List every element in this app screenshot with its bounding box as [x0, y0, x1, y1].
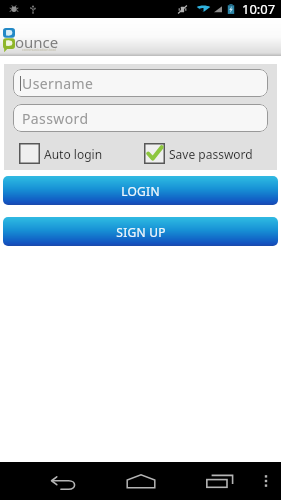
- button[interactable]: Home: [102, 462, 180, 500]
- button[interactable]: Auto login: [19, 143, 103, 164]
- button[interactable]: LOGIN: [3, 176, 278, 205]
- button[interactable]: Back: [24, 462, 102, 500]
- staticText: Save password: [169, 146, 253, 162]
- staticText: communication tool: [22, 47, 56, 52]
- staticText: Password: [22, 109, 89, 128]
- staticText: LOGIN: [121, 183, 160, 199]
- button[interactable]: SIGN UP: [3, 217, 278, 246]
- button[interactable]: Save password: [144, 143, 253, 164]
- staticText: Auto login: [44, 146, 103, 162]
- button[interactable]: Username: [13, 69, 268, 97]
- button[interactable]: Password: [13, 104, 268, 132]
- button[interactable]: More options: [255, 462, 277, 500]
- button[interactable]: Recent apps: [181, 462, 259, 500]
- staticText: SIGN UP: [116, 224, 166, 240]
- staticText: 10:07: [242, 0, 276, 18]
- staticText: ounce: [15, 32, 59, 52]
- staticText: Username: [22, 74, 94, 93]
